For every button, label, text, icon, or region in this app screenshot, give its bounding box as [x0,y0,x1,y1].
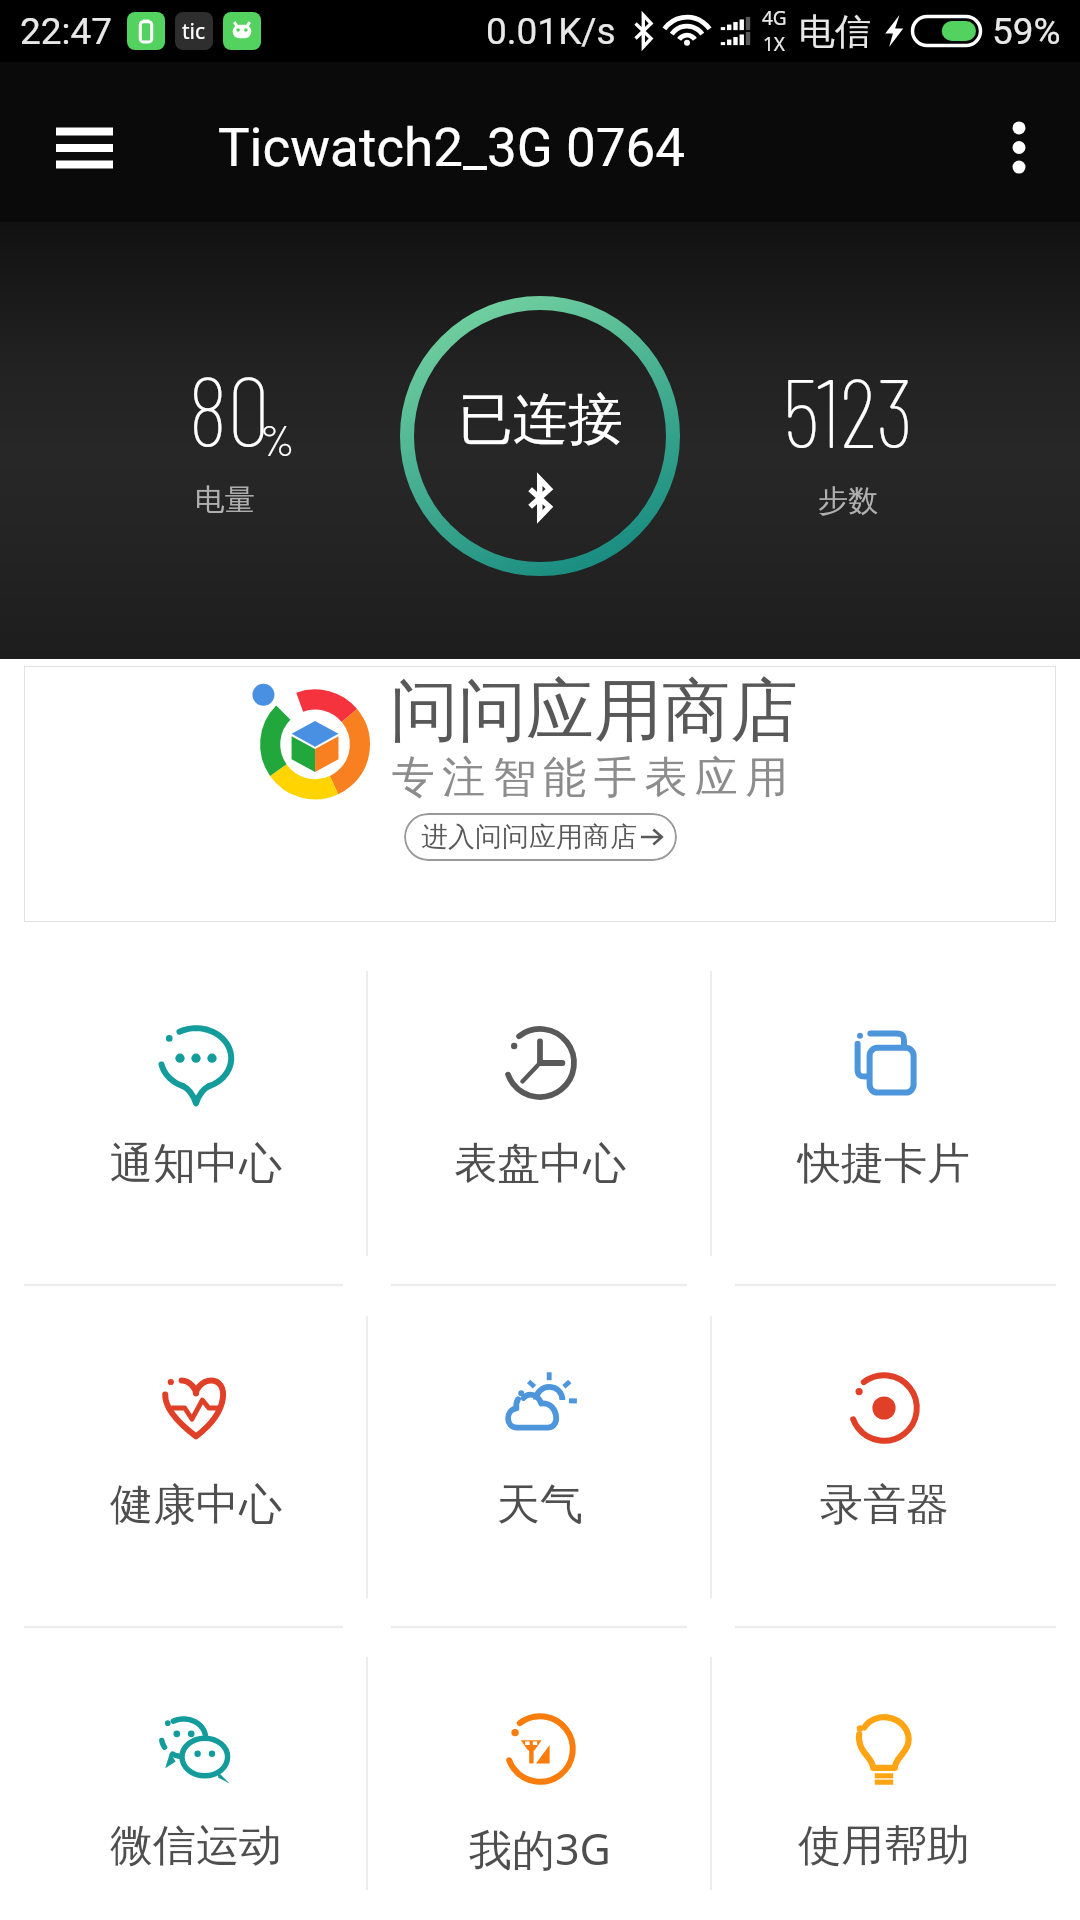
staticText: 微信运动 [110,1819,282,1873]
staticText: 电量 [195,481,255,519]
staticText: 已连接 [458,385,623,454]
staticText: 4G [762,5,787,31]
button[interactable]: 表盘中心 [368,922,712,1286]
button[interactable]: 通知中心 [24,922,368,1286]
button[interactable]: Menu [0,73,168,222]
staticText: Ticwatch2_3G 0764 [218,117,686,179]
staticText: 专注智能手表应用 [388,751,792,805]
button[interactable]: 问问应用商店 [24,666,1056,922]
button[interactable]: 使用帮助 [712,1628,1056,1920]
staticText: 步数 [818,482,878,520]
staticText: 22:47 [20,10,113,53]
staticText: 健康中心 [110,1478,282,1532]
button[interactable]: 我的3G [368,1628,712,1920]
staticText: 电信 [799,9,871,54]
staticText: 我的3G [469,1819,611,1878]
staticText: 1X [763,31,786,57]
staticText: 通知中心 [110,1137,282,1191]
button[interactable]: 快捷卡片 [712,922,1056,1286]
staticText: tic [182,17,206,46]
button[interactable]: 录音器 [712,1286,1056,1628]
staticText: 进入问问应用商店 [421,820,637,854]
staticText: 录音器 [820,1478,949,1532]
staticText: 快捷卡片 [798,1137,970,1191]
button[interactable]: 天气 [368,1286,712,1628]
staticText: 0.01K/s [486,10,616,53]
button[interactable]: 进入问问应用商店 [421,813,666,861]
staticText: 59% [992,10,1061,53]
staticText: 问问应用商店 [390,669,798,755]
staticText: 80 [188,351,270,466]
button[interactable]: 微信运动 [24,1628,368,1920]
button[interactable]: More options [958,73,1080,222]
staticText: 5123 [782,352,914,467]
staticText: % [260,412,295,465]
staticText: 天气 [497,1478,583,1532]
staticText: 使用帮助 [798,1819,970,1873]
button[interactable]: 健康中心 [24,1286,368,1628]
staticText: 表盘中心 [454,1137,626,1191]
